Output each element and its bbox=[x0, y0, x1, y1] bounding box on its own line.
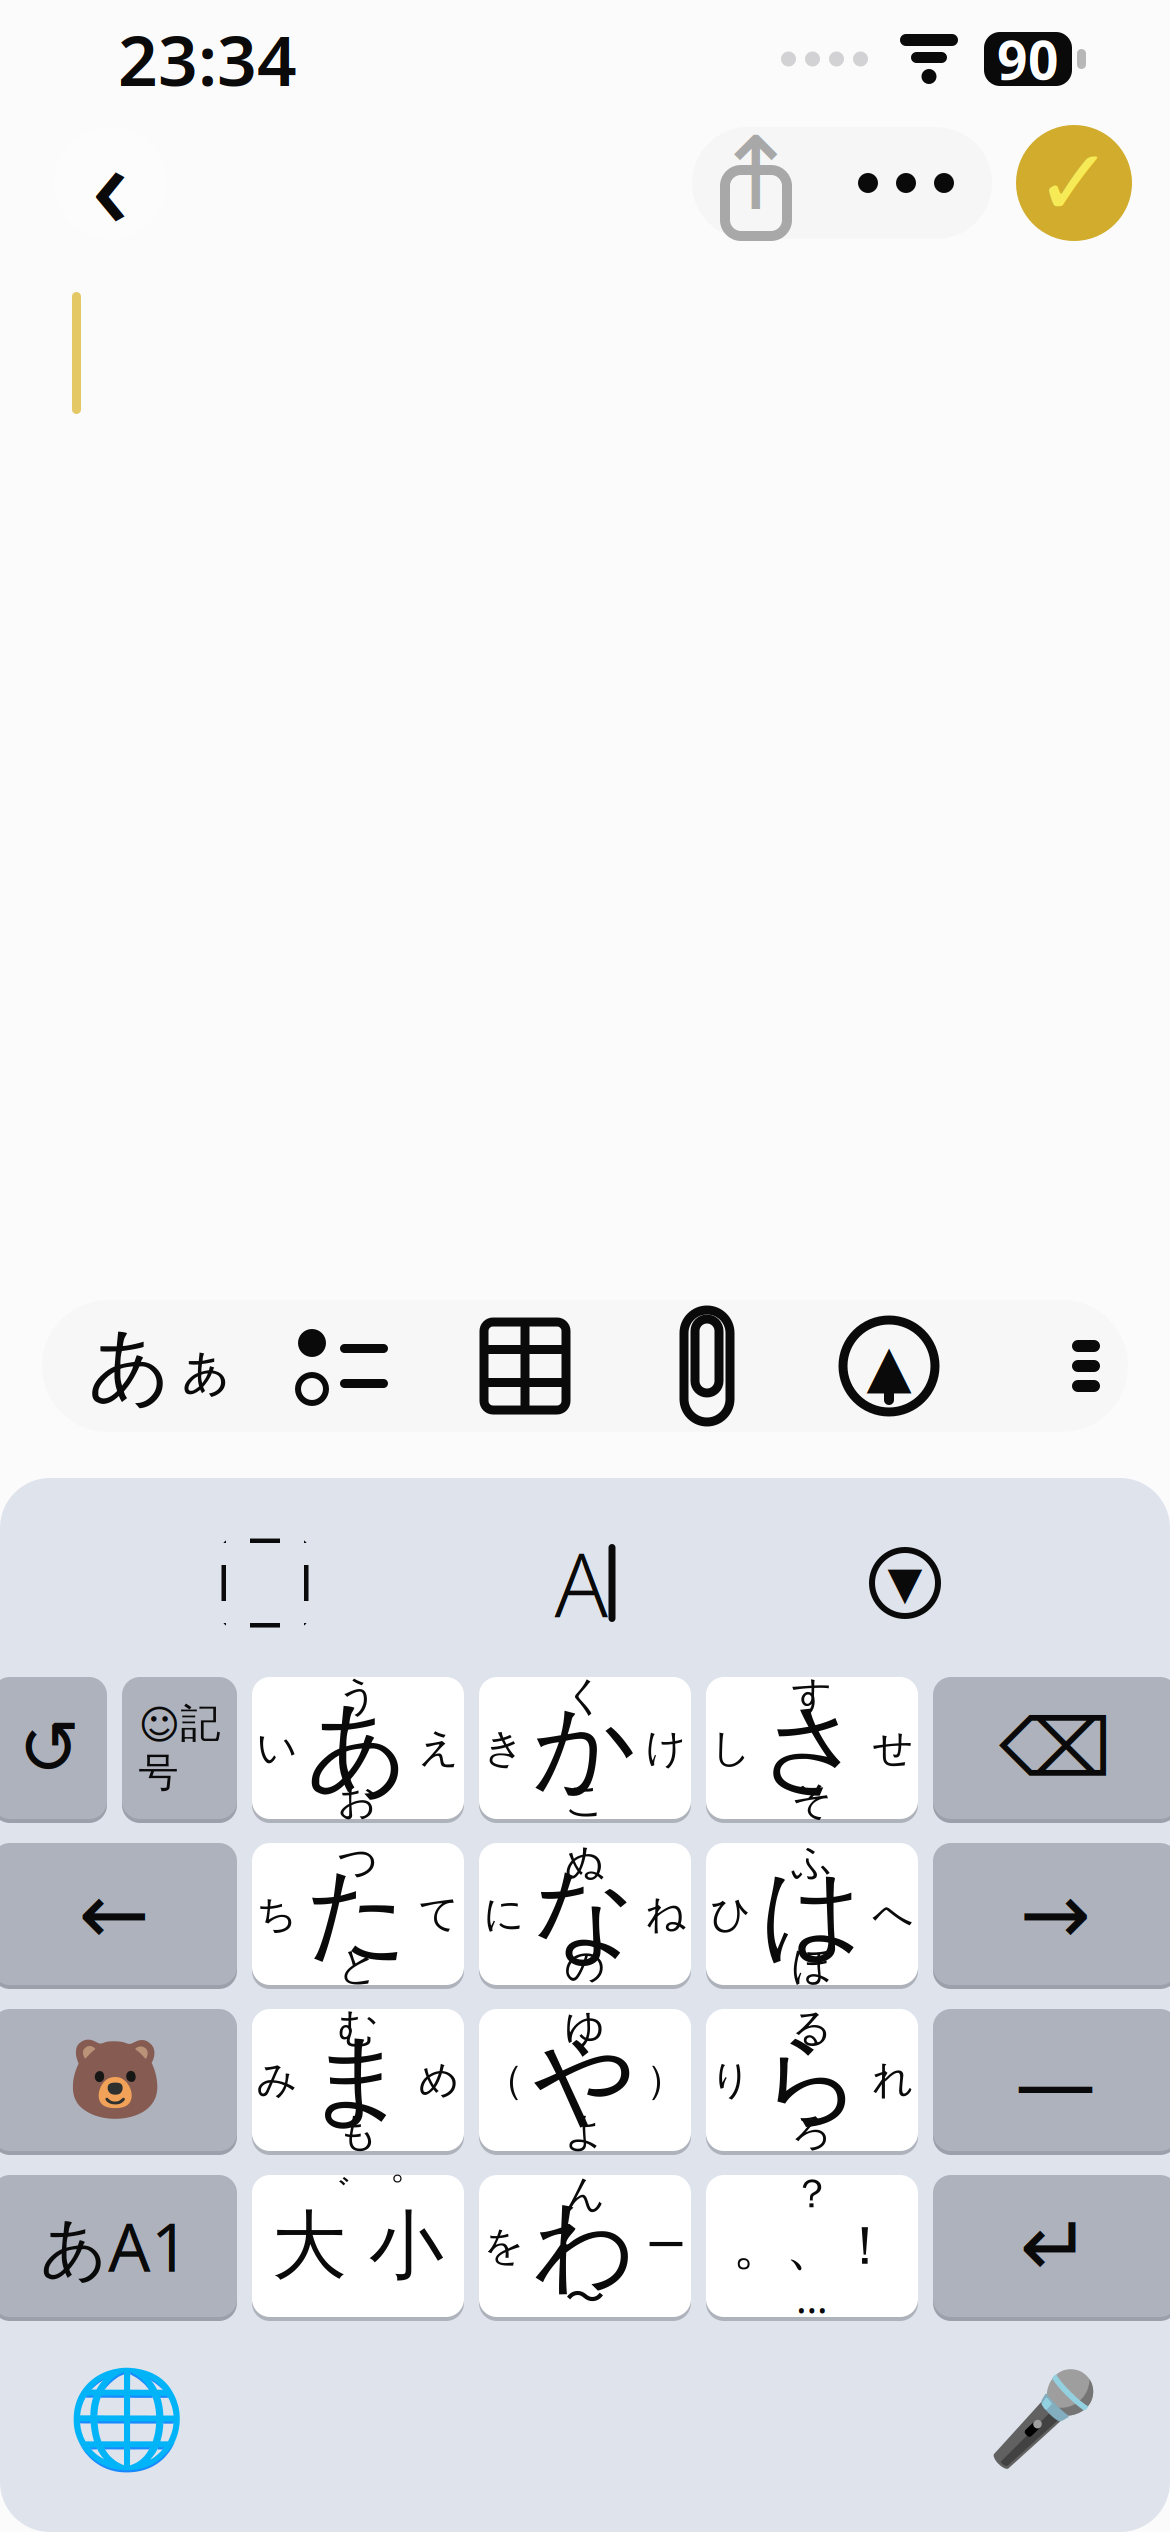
staticText: し bbox=[710, 1723, 751, 1772]
staticText: は bbox=[760, 1852, 864, 1976]
button[interactable]: Cursor left bbox=[0, 1839, 237, 1989]
button[interactable]: Attach file bbox=[616, 1300, 798, 1432]
staticText: う bbox=[337, 1671, 378, 1720]
staticText: → bbox=[1019, 1866, 1091, 1962]
button[interactable]: Done bbox=[1016, 125, 1132, 241]
staticText: ‹ bbox=[91, 107, 128, 259]
staticText: み bbox=[256, 2055, 297, 2104]
staticText: へ bbox=[872, 1889, 913, 1938]
button[interactable]: Emoticons bbox=[0, 2005, 237, 2155]
staticText: 23:34 bbox=[118, 13, 297, 105]
button[interactable]: 大 小 bbox=[252, 2171, 464, 2321]
staticText: も bbox=[337, 2107, 378, 2156]
staticText: 🎤 bbox=[986, 2367, 1099, 2471]
staticText: 🐻 bbox=[66, 2036, 162, 2124]
button[interactable]: わ bbox=[479, 2171, 691, 2321]
staticText: て bbox=[418, 1889, 459, 1938]
staticText: あA1 bbox=[40, 2202, 189, 2290]
button[interactable]: は bbox=[706, 1839, 918, 1989]
staticText: 〜 bbox=[565, 2273, 605, 2322]
staticText: く bbox=[564, 1671, 605, 1720]
button[interactable]: Undo bbox=[0, 1673, 107, 1823]
staticText: き bbox=[483, 1723, 524, 1772]
button[interactable]: Hide keyboard bbox=[830, 1518, 980, 1648]
staticText: ▲ bbox=[866, 1333, 911, 1399]
staticText: ら bbox=[760, 2018, 864, 2142]
staticText: ち bbox=[256, 1889, 297, 1938]
staticText: ↵ bbox=[1019, 2198, 1091, 2294]
staticText: ひ bbox=[710, 1889, 751, 1938]
button[interactable]: Cursor right bbox=[933, 1839, 1170, 1989]
staticText: の bbox=[564, 1941, 605, 1990]
staticText: ゛ ゜ bbox=[311, 2169, 405, 2218]
staticText: た bbox=[306, 1852, 410, 1976]
staticText: ▼ bbox=[887, 1557, 922, 1609]
button[interactable]: 。、！ bbox=[706, 2171, 918, 2321]
button[interactable]: Space bbox=[933, 2005, 1170, 2155]
button[interactable]: さ bbox=[706, 1673, 918, 1823]
button[interactable]: Scan text bbox=[190, 1518, 340, 1648]
staticText: せ bbox=[872, 1723, 913, 1772]
staticText: つ bbox=[337, 1837, 378, 1886]
staticText: 大 小 bbox=[272, 2200, 444, 2292]
staticText: さ bbox=[760, 1686, 864, 1810]
button[interactable]: Markup bbox=[798, 1300, 980, 1432]
staticText: — bbox=[1015, 2027, 1095, 2133]
staticText: ほ bbox=[791, 1941, 832, 1990]
button[interactable]: ら bbox=[706, 2005, 918, 2155]
staticText: や bbox=[533, 2018, 637, 2142]
staticText: ぬ bbox=[564, 1837, 605, 1886]
button[interactable]: Table bbox=[434, 1300, 616, 1432]
staticText: に bbox=[483, 1889, 524, 1938]
staticText: ま bbox=[306, 2018, 410, 2142]
button[interactable]: Text formatting bbox=[70, 1300, 252, 1432]
button[interactable]: ま bbox=[252, 2005, 464, 2155]
staticText: （ bbox=[484, 2055, 524, 2104]
button[interactable]: Checklist bbox=[252, 1300, 434, 1432]
button[interactable]: Change input mode bbox=[0, 2171, 237, 2321]
button[interactable]: Symbols bbox=[122, 1673, 237, 1823]
button[interactable]: Dictation bbox=[968, 2354, 1118, 2484]
button[interactable]: More options bbox=[820, 127, 992, 239]
staticText: と bbox=[337, 1941, 378, 1990]
button[interactable]: な bbox=[479, 1839, 691, 1989]
staticText: あ bbox=[87, 1315, 172, 1417]
staticText: ） bbox=[646, 2055, 686, 2104]
button[interactable]: Back bbox=[54, 127, 166, 239]
staticText: こ bbox=[564, 1775, 605, 1824]
staticText: す bbox=[791, 1671, 832, 1720]
staticText: め bbox=[418, 2055, 459, 2104]
button[interactable]: Handwriting input bbox=[510, 1518, 660, 1648]
staticText: そ bbox=[791, 1775, 832, 1824]
staticText: 。、！ bbox=[732, 2213, 891, 2279]
staticText: ✓ bbox=[1035, 130, 1113, 236]
staticText: ぁ bbox=[174, 1330, 234, 1402]
staticText: を bbox=[483, 2221, 524, 2270]
staticText: り bbox=[710, 2055, 751, 2104]
button[interactable]: や bbox=[479, 2005, 691, 2155]
staticText: ー bbox=[646, 2221, 686, 2270]
button[interactable]: Delete bbox=[933, 1673, 1170, 1823]
button[interactable]: More tools bbox=[980, 1300, 1100, 1432]
button[interactable]: た bbox=[252, 1839, 464, 1989]
staticText: え bbox=[418, 1723, 459, 1772]
staticText: ろ bbox=[791, 2107, 832, 2156]
button[interactable]: Return bbox=[933, 2171, 1170, 2321]
button[interactable]: Share bbox=[692, 127, 820, 239]
staticText: け bbox=[645, 1723, 686, 1772]
staticText: ← bbox=[78, 1866, 150, 1962]
button[interactable]: か bbox=[479, 1673, 691, 1823]
staticText: ゆ bbox=[564, 2003, 605, 2052]
button[interactable]: Next keyboard bbox=[52, 2354, 202, 2484]
staticText: お bbox=[337, 1775, 378, 1824]
staticText: ↺ bbox=[18, 1706, 81, 1790]
button[interactable]: あ bbox=[252, 1673, 464, 1823]
staticText: む bbox=[337, 2003, 378, 2052]
staticText: ね bbox=[645, 1889, 686, 1938]
staticText: 90 bbox=[997, 24, 1059, 94]
staticText: A bbox=[554, 1525, 608, 1641]
staticText: ？ bbox=[792, 2169, 832, 2218]
staticText: い bbox=[256, 1723, 297, 1772]
staticText: か bbox=[533, 1686, 637, 1810]
staticText: 🌐 bbox=[67, 2364, 187, 2474]
